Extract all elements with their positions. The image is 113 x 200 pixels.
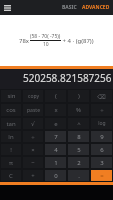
staticText: 520258.821587256 bbox=[23, 71, 112, 85]
button[interactable]: Menu bbox=[1, 1, 14, 14]
staticText: ⌫ bbox=[97, 93, 106, 100]
staticText: = bbox=[100, 172, 104, 180]
button[interactable]: x bbox=[45, 104, 66, 116]
staticText: ! bbox=[10, 146, 12, 154]
button[interactable]: log bbox=[91, 118, 112, 129]
button[interactable]: % bbox=[68, 104, 89, 116]
staticText: BASIC bbox=[62, 4, 77, 11]
button[interactable]: 7 bbox=[45, 131, 66, 142]
button[interactable]: ÷ bbox=[23, 131, 43, 142]
staticText: (58 - 70( -75)) bbox=[30, 33, 61, 40]
staticText: − bbox=[31, 159, 35, 167]
staticText: 78x bbox=[19, 37, 30, 45]
staticText: 4 bbox=[54, 146, 58, 154]
staticText: 5 bbox=[77, 146, 81, 154]
staticText: ^ bbox=[77, 120, 81, 128]
button[interactable]: ln bbox=[1, 131, 21, 142]
staticText: × bbox=[31, 146, 35, 154]
staticText: . bbox=[78, 172, 80, 180]
button[interactable]: 0 bbox=[45, 170, 66, 181]
button[interactable]: = bbox=[91, 170, 112, 181]
button[interactable]: × bbox=[23, 144, 43, 155]
staticText: ADVANCED bbox=[82, 4, 110, 11]
staticText: ÷ bbox=[31, 133, 35, 141]
staticText: % bbox=[76, 106, 81, 114]
button[interactable]: 1 bbox=[45, 157, 66, 168]
button[interactable]: √ bbox=[23, 118, 43, 129]
staticText: 0 bbox=[54, 172, 58, 180]
button[interactable]: ^ bbox=[68, 118, 89, 129]
button[interactable]: sin bbox=[1, 90, 21, 102]
button[interactable]: + bbox=[23, 170, 43, 181]
staticText: sin bbox=[7, 92, 16, 100]
button[interactable]: 5 bbox=[68, 144, 89, 155]
button[interactable]: 6 bbox=[91, 144, 112, 155]
staticText: ( bbox=[55, 92, 57, 100]
staticText: π bbox=[9, 159, 13, 167]
staticText: ÷ bbox=[100, 106, 104, 114]
button[interactable]: ÷ bbox=[91, 104, 112, 116]
staticText: cos bbox=[6, 106, 16, 114]
staticText: + 4 · (g(87)) bbox=[61, 37, 94, 45]
staticText: ln bbox=[8, 133, 14, 141]
staticText: ) bbox=[78, 92, 80, 100]
staticText: copy bbox=[28, 93, 39, 100]
staticText: C bbox=[9, 172, 13, 180]
button[interactable]: ⌫ bbox=[91, 90, 112, 102]
button[interactable]: cos bbox=[1, 104, 21, 116]
button[interactable]: copy bbox=[23, 90, 43, 102]
staticText: e bbox=[54, 120, 58, 128]
button[interactable]: 4 bbox=[45, 144, 66, 155]
staticText: √ bbox=[31, 120, 35, 127]
staticText: 8 bbox=[77, 133, 81, 141]
staticText: x bbox=[54, 106, 58, 114]
button[interactable]: e bbox=[45, 118, 66, 129]
staticText: 7 bbox=[54, 133, 58, 141]
button[interactable]: 8 bbox=[68, 131, 89, 142]
staticText: tan bbox=[6, 120, 16, 128]
button[interactable]: 9 bbox=[91, 131, 112, 142]
button[interactable]: 3 bbox=[91, 157, 112, 168]
staticText: 10 bbox=[43, 41, 49, 48]
button[interactable]: 2 bbox=[68, 157, 89, 168]
staticText: 2 bbox=[77, 159, 81, 167]
button[interactable]: BASIC bbox=[59, 0, 80, 15]
button[interactable]: − bbox=[23, 157, 43, 168]
button[interactable]: ( bbox=[45, 90, 66, 102]
staticText: paste bbox=[27, 107, 40, 114]
staticText: + bbox=[31, 172, 35, 180]
staticText: 9 bbox=[100, 133, 104, 141]
staticText: log bbox=[98, 120, 106, 127]
staticText: 6 bbox=[100, 146, 104, 154]
button[interactable]: tan bbox=[1, 118, 21, 129]
button[interactable]: paste bbox=[23, 104, 43, 116]
button[interactable]: C bbox=[1, 170, 21, 181]
staticText: 1 bbox=[54, 159, 58, 167]
button[interactable]: ! bbox=[1, 144, 21, 155]
button[interactable]: π bbox=[1, 157, 21, 168]
staticText: 3 bbox=[100, 159, 104, 167]
button[interactable]: ADVANCED bbox=[80, 0, 113, 15]
button[interactable]: ) bbox=[68, 90, 89, 102]
